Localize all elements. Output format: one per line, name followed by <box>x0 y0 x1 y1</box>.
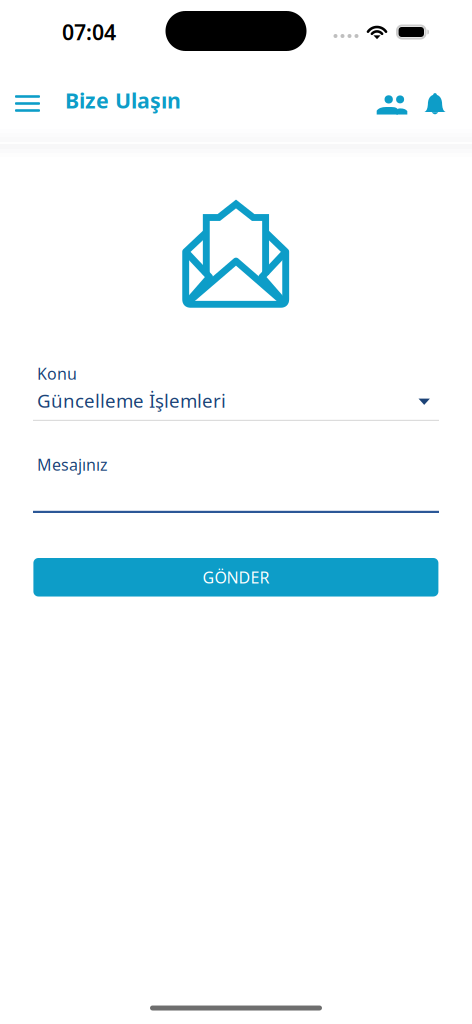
button[interactable]: Menu <box>0 77 55 130</box>
staticText: 07:04 <box>62 18 116 46</box>
button[interactable]: Contacts <box>365 78 419 131</box>
staticText: Konu <box>37 363 77 384</box>
button[interactable]: Mesajınız <box>33 477 439 513</box>
staticText: Mesajınız <box>37 454 108 475</box>
staticText: Bize Ulaşın <box>65 86 181 114</box>
button[interactable]: Notifications <box>411 78 459 131</box>
button[interactable]: GÖNDER <box>33 558 438 596</box>
staticText: GÖNDER <box>202 567 269 588</box>
button[interactable]: Konu <box>33 385 439 421</box>
staticText: Güncelleme İşlemleri <box>37 388 226 413</box>
